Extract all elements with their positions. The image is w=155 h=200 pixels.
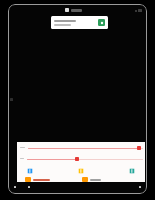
- button[interactable]: App icon: [51, 16, 108, 29]
- button[interactable]: Storage: [82, 177, 101, 182]
- button[interactable]: Alert: [25, 177, 50, 182]
- other: Status: [135, 9, 142, 12]
- button[interactable]: Brightness: [78, 168, 84, 174]
- button[interactable]: Recents: [138, 185, 142, 189]
- button[interactable]: Bluetooth: [27, 168, 33, 174]
- button[interactable]: [17, 144, 145, 151]
- button[interactable]: [17, 155, 145, 162]
- button[interactable]: Back: [13, 185, 17, 189]
- other: App icon: [98, 19, 105, 26]
- button[interactable]: Home: [27, 185, 31, 189]
- button[interactable]: Network: [129, 168, 135, 174]
